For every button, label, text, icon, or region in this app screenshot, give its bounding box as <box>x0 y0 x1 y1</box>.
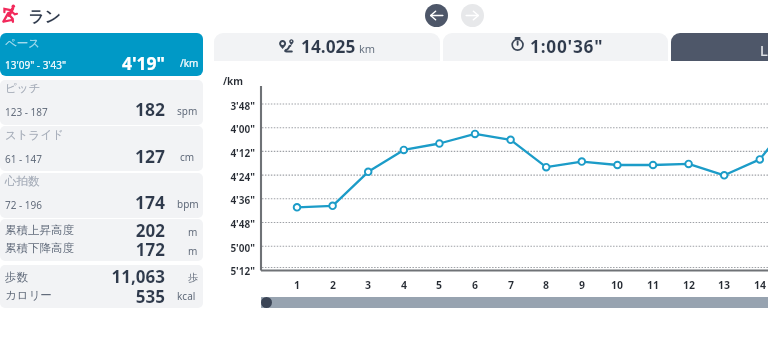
staticText: /km <box>180 56 199 70</box>
staticText: ラン <box>28 7 61 27</box>
staticText: L <box>760 40 768 60</box>
staticText: 5'12" <box>195 264 255 278</box>
staticText: 61 - 147 <box>5 152 43 166</box>
staticText: /km <box>183 74 243 88</box>
staticText: 13'09" - 3'43" <box>5 58 67 72</box>
staticText: ペース <box>5 36 41 50</box>
staticText: 4'19" <box>15 51 165 75</box>
button[interactable] <box>0 80 203 125</box>
staticText: 10 <box>605 278 629 292</box>
staticText: 4 <box>392 278 416 292</box>
staticText: 6 <box>463 278 487 292</box>
staticText: 14.025 <box>301 35 356 59</box>
staticText: cm <box>180 150 195 164</box>
button[interactable] <box>443 33 668 61</box>
button[interactable] <box>0 265 203 308</box>
staticText: 3'48" <box>195 99 255 113</box>
staticText: kcal <box>177 289 196 303</box>
staticText: 535 <box>15 285 165 308</box>
staticText: 182 <box>15 97 165 121</box>
staticText: 172 <box>15 238 165 261</box>
staticText: 歩数 <box>5 270 28 284</box>
staticText: 202 <box>15 219 165 242</box>
staticText: 4'48" <box>195 217 255 231</box>
staticText: 7 <box>499 278 523 292</box>
staticText: 累積下降高度 <box>5 241 74 255</box>
staticText: 心拍数 <box>5 174 40 188</box>
button[interactable] <box>671 33 768 61</box>
staticText: spm <box>177 104 198 118</box>
button[interactable] <box>214 33 440 61</box>
staticText: 4'36" <box>195 193 255 207</box>
staticText: ストライド <box>5 128 64 142</box>
button[interactable] <box>0 33 203 76</box>
staticText: 72 - 196 <box>5 198 43 212</box>
staticText: 4'12" <box>195 146 255 160</box>
staticText: 12 <box>677 278 701 292</box>
staticText: 5'00" <box>195 241 255 255</box>
staticText: ピッチ <box>5 81 41 95</box>
button[interactable]: Next <box>461 4 484 27</box>
staticText: m <box>188 244 198 258</box>
staticText: 3 <box>356 278 380 292</box>
staticText: 9 <box>570 278 594 292</box>
button[interactable] <box>0 219 203 261</box>
staticText: 8 <box>534 278 558 292</box>
button[interactable] <box>0 126 203 171</box>
button[interactable] <box>0 0 92 30</box>
staticText: 1:00'36" <box>530 35 604 59</box>
staticText: 4'00" <box>195 122 255 136</box>
staticText: 14 <box>748 278 768 292</box>
staticText: 11,063 <box>15 265 165 288</box>
button[interactable]: Scroll handle <box>261 297 272 308</box>
staticText: 歩 <box>188 271 198 284</box>
staticText: bpm <box>177 197 199 211</box>
staticText: 2 <box>321 278 345 292</box>
staticText: 13 <box>712 278 736 292</box>
staticText: 1 <box>285 278 309 292</box>
staticText: カロリー <box>5 288 52 302</box>
staticText: 累積上昇高度 <box>5 223 74 237</box>
staticText: 4'24" <box>195 170 255 184</box>
button[interactable]: Previous <box>425 4 448 27</box>
staticText: 123 - 187 <box>5 105 48 119</box>
staticText: 174 <box>15 190 165 214</box>
staticText: m <box>188 225 198 239</box>
staticText: 11 <box>641 278 665 292</box>
staticText: 5 <box>427 278 451 292</box>
staticText: 127 <box>15 144 165 168</box>
button[interactable] <box>0 173 203 218</box>
staticText: km <box>359 41 376 56</box>
button[interactable]: Scroll range <box>261 297 768 308</box>
